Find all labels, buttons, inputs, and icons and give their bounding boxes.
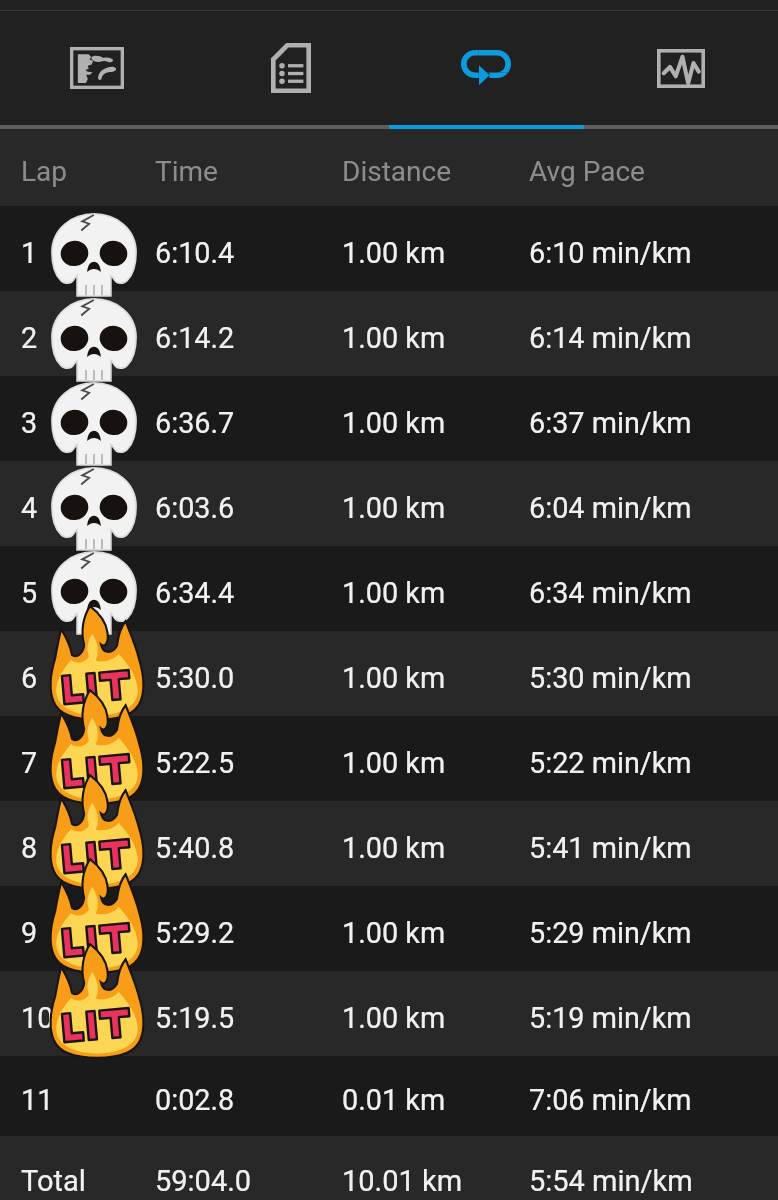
staticText: 6:10.4 (155, 236, 235, 270)
button[interactable]: 7 (0, 716, 778, 801)
button[interactable]: 6 (0, 631, 778, 716)
button[interactable]: 8 (0, 801, 778, 886)
staticText: 10 (21, 1001, 54, 1035)
staticText: 5:19.5 (155, 1001, 235, 1035)
button[interactable]: 11 (0, 1056, 778, 1136)
staticText: 1.00 km (342, 236, 446, 270)
button[interactable]: 1 (0, 206, 778, 291)
button[interactable]: 3 (0, 376, 778, 461)
button[interactable]: 10 (0, 971, 778, 1056)
staticText: 11 (21, 1083, 54, 1117)
staticText: 0.01 km (342, 1083, 446, 1117)
staticText: 6:04 min/km (529, 491, 692, 525)
button[interactable]: 2 (0, 291, 778, 376)
staticText: 5:29 min/km (529, 916, 692, 950)
button[interactable]: 4 (0, 461, 778, 546)
staticText: Total (21, 1164, 86, 1198)
button[interactable]: Map (0, 11, 194, 125)
staticText: 1.00 km (342, 321, 446, 355)
staticText: 5:30 min/km (529, 661, 692, 695)
staticText: 1 (21, 236, 38, 270)
staticText: 9 (21, 916, 38, 950)
staticText: 5:40.8 (155, 831, 235, 865)
staticText: 3 (21, 406, 38, 440)
staticText: 1.00 km (342, 661, 446, 695)
staticText: 0:02.8 (155, 1083, 235, 1117)
button[interactable]: 5 (0, 546, 778, 631)
staticText: 6:14 min/km (529, 321, 692, 355)
staticText: 1.00 km (342, 576, 446, 610)
staticText: 5 (21, 576, 38, 610)
staticText: 1.00 km (342, 831, 446, 865)
staticText: 8 (21, 831, 38, 865)
staticText: 5:41 min/km (529, 831, 692, 865)
staticText: 1.00 km (342, 916, 446, 950)
staticText: 6:14.2 (155, 321, 235, 355)
staticText: 1.00 km (342, 491, 446, 525)
staticText: 6:03.6 (155, 491, 235, 525)
staticText: 6:10 min/km (529, 236, 692, 270)
staticText: Distance (342, 155, 451, 188)
staticText: 7:06 min/km (529, 1083, 692, 1117)
button[interactable]: Total (0, 1136, 778, 1200)
staticText: 6:34 min/km (529, 576, 692, 610)
button[interactable]: Splits (194, 11, 388, 125)
button[interactable]: 9 (0, 886, 778, 971)
staticText: 6:34.4 (155, 576, 235, 610)
button[interactable]: Laps (388, 11, 583, 125)
staticText: 10.01 km (342, 1164, 463, 1198)
staticText: 1.00 km (342, 406, 446, 440)
staticText: 7 (21, 746, 38, 780)
staticText: 6:37 min/km (529, 406, 692, 440)
staticText: 5:30.0 (155, 661, 235, 695)
staticText: 1.00 km (342, 746, 446, 780)
staticText: 5:29.2 (155, 916, 235, 950)
staticText: 6:36.7 (155, 406, 235, 440)
staticText: 5:54 min/km (529, 1164, 693, 1198)
staticText: Avg Pace (529, 155, 645, 188)
staticText: Time (155, 155, 218, 188)
staticText: Lap (21, 155, 68, 188)
staticText: 1.00 km (342, 1001, 446, 1035)
staticText: 59:04.0 (155, 1164, 252, 1198)
staticText: 2 (21, 321, 38, 355)
staticText: 5:22.5 (155, 746, 235, 780)
staticText: 5:19 min/km (529, 1001, 692, 1035)
staticText: 6 (21, 661, 38, 695)
staticText: 4 (21, 491, 38, 525)
button[interactable]: Graphs (583, 11, 778, 125)
staticText: 5:22 min/km (529, 746, 692, 780)
